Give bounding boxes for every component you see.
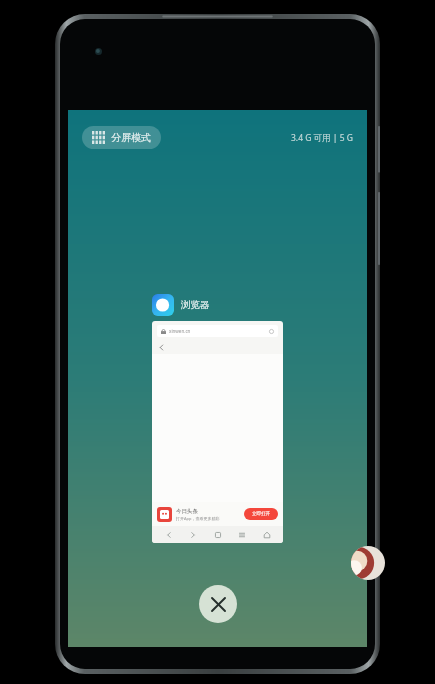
button[interactable]: Forward — [185, 527, 201, 543]
staticText: 打开App，查看更多精彩 — [176, 516, 220, 521]
button[interactable]: xinwen.cn — [152, 321, 283, 543]
button[interactable]: 立即打开 — [244, 508, 278, 520]
button[interactable]: Tabs — [210, 527, 226, 543]
staticText: 浏览器 — [181, 299, 210, 311]
button[interactable]: xinwen.cn — [157, 325, 278, 337]
staticText: 3.4 G 可用 | 5 G — [291, 132, 353, 144]
staticText: 今日头条 — [176, 508, 198, 515]
staticText: 分屏模式 — [111, 131, 151, 144]
button[interactable]: Close all recent apps — [199, 585, 237, 623]
button[interactable]: Back — [161, 527, 177, 543]
button[interactable] — [351, 546, 385, 580]
staticText: 立即打开 — [252, 511, 270, 517]
button[interactable]: Browser — [152, 294, 174, 316]
staticText: xinwen.cn — [169, 328, 191, 334]
button[interactable]: Menu — [234, 527, 250, 543]
button[interactable]: Home — [259, 527, 275, 543]
button[interactable]: 今日头条 — [152, 502, 283, 526]
button[interactable]: 分屏模式 — [82, 126, 161, 149]
